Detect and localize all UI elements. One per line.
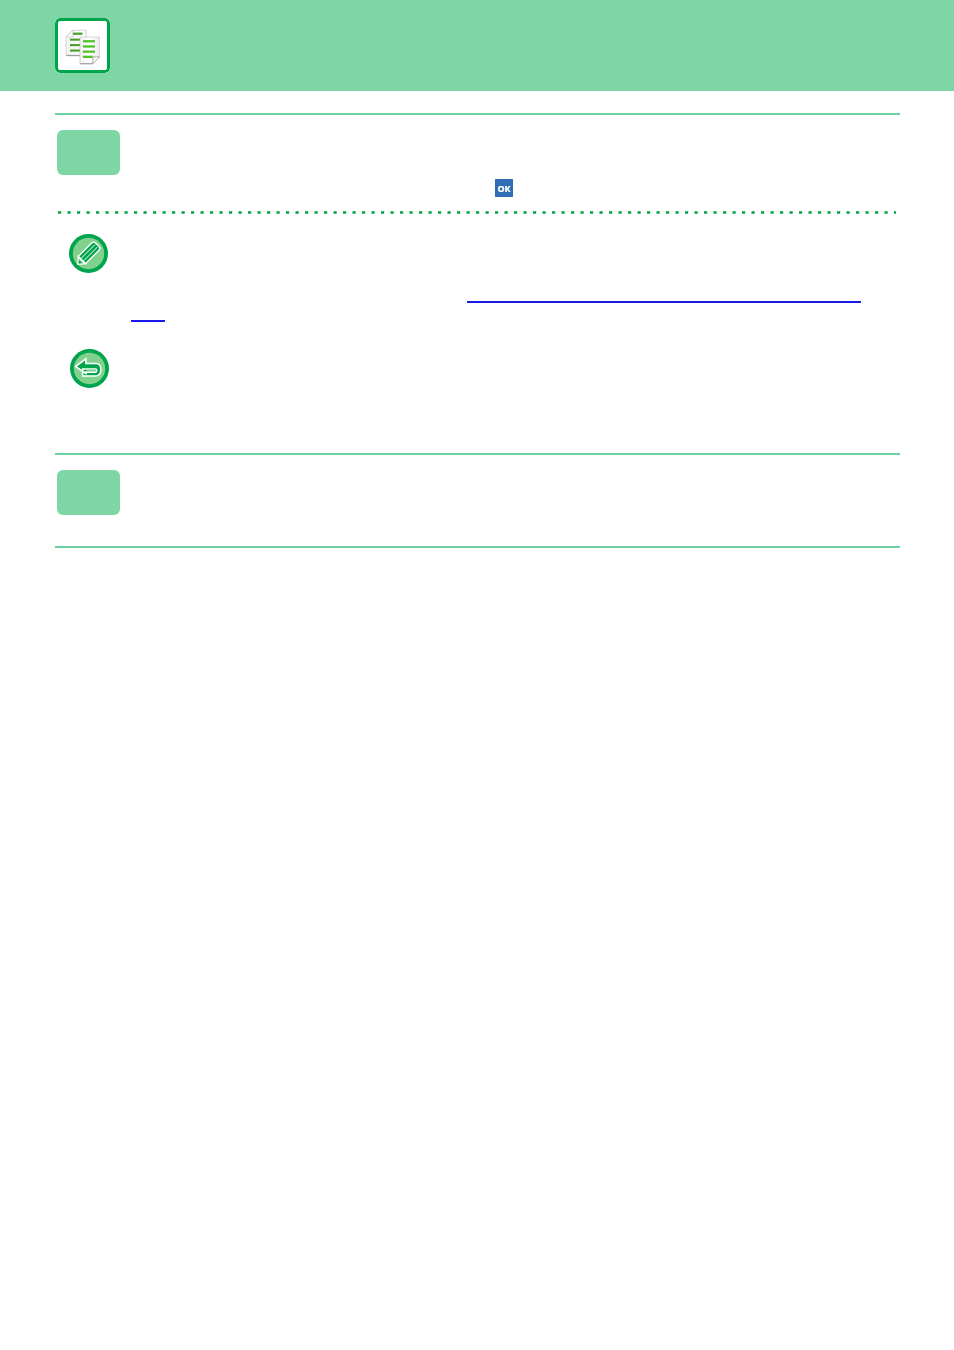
button[interactable]	[57, 470, 120, 515]
button[interactable]: Note	[69, 234, 108, 273]
button[interactable]: OK	[495, 179, 513, 197]
button[interactable]: Back	[70, 349, 109, 388]
staticText: OK	[497, 182, 511, 194]
button[interactable]	[57, 130, 120, 175]
button[interactable]: Copy	[55, 18, 110, 73]
